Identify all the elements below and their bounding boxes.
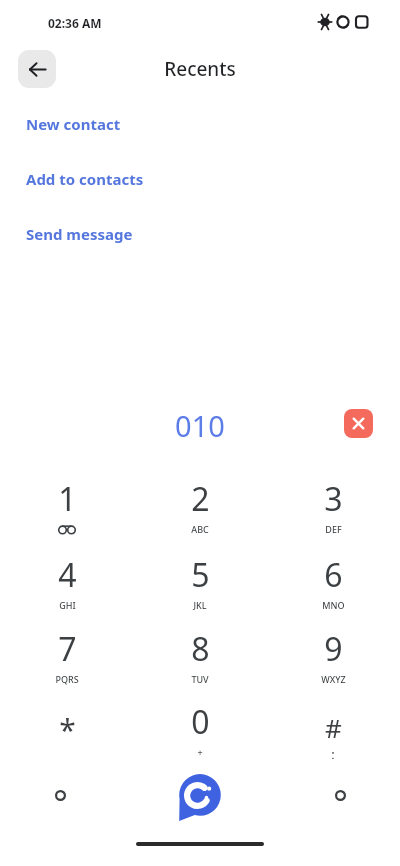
staticText: 02:36 AM xyxy=(48,15,102,31)
staticText: TUV xyxy=(191,673,209,685)
button[interactable]: 7 xyxy=(19,624,115,686)
staticText: 010 xyxy=(0,406,400,445)
button[interactable]: 8 xyxy=(152,624,248,686)
staticText: Send message xyxy=(26,224,133,244)
staticText: 2 xyxy=(191,477,210,521)
staticText: GHI xyxy=(59,599,76,611)
staticText: 8 xyxy=(191,627,210,671)
staticText: 9 xyxy=(324,627,343,671)
staticText: Recents xyxy=(0,56,400,82)
button[interactable]: Add to contacts xyxy=(26,169,144,189)
staticText: New contact xyxy=(26,114,121,134)
button[interactable]: 1 xyxy=(19,474,115,536)
staticText: 0 xyxy=(191,700,210,744)
button[interactable]: 4 xyxy=(19,550,115,612)
button[interactable]: 9 xyxy=(285,624,381,686)
staticText: PQRS xyxy=(55,673,79,685)
staticText: 4 xyxy=(58,553,77,597)
staticText: 1 xyxy=(58,477,77,521)
staticText: WXYZ xyxy=(321,673,346,685)
staticText: 3 xyxy=(324,477,343,521)
staticText: # xyxy=(325,710,342,745)
staticText: Add to contacts xyxy=(26,169,144,189)
staticText: 7 xyxy=(58,627,77,671)
staticText: 6 xyxy=(324,553,343,597)
button[interactable]: Send message xyxy=(26,224,133,244)
staticText: + xyxy=(197,746,203,758)
button[interactable]: Video call xyxy=(324,779,356,811)
button[interactable]: Delete xyxy=(344,409,373,438)
staticText: MNO xyxy=(322,599,345,611)
button[interactable]: 0 xyxy=(152,697,248,759)
button[interactable]: More options xyxy=(44,779,76,811)
button[interactable]: 3 xyxy=(285,474,381,536)
button[interactable]: * xyxy=(19,697,115,759)
button[interactable]: 6 xyxy=(285,550,381,612)
staticText: * xyxy=(59,709,76,750)
button[interactable]: Back xyxy=(18,50,56,88)
staticText: 5 xyxy=(191,553,210,597)
staticText: DEF xyxy=(325,523,342,535)
button[interactable]: 5 xyxy=(152,550,248,612)
button[interactable]: # xyxy=(285,697,381,759)
button[interactable]: 2 xyxy=(152,474,248,536)
staticText: ; xyxy=(331,745,335,759)
button[interactable]: Call xyxy=(174,771,226,823)
staticText: JKL xyxy=(193,599,207,611)
button[interactable]: New contact xyxy=(26,114,121,134)
staticText: ABC xyxy=(191,523,209,535)
